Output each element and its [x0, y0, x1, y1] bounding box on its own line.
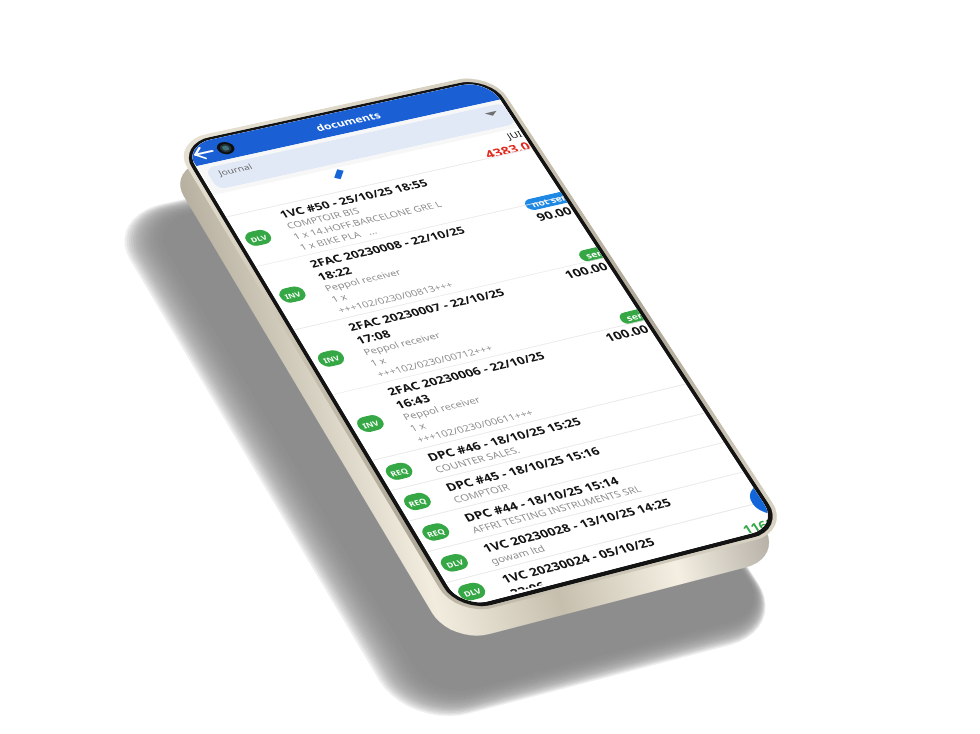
button[interactable]: Back	[184, 139, 226, 166]
staticText: COMPTOIR	[451, 481, 513, 506]
staticText: 1VC 20230028 - 13/10/25 14:25	[479, 494, 674, 555]
staticText: DLV	[248, 232, 269, 244]
staticText: sent	[583, 248, 603, 261]
staticText: REQ	[424, 526, 447, 539]
staticText: COMPTOIR BIS	[284, 205, 363, 232]
staticText: 1169	[739, 515, 778, 535]
button[interactable]: Add document	[743, 486, 771, 518]
staticText: COUNTER SALES.	[432, 444, 523, 476]
staticText: 1 x	[368, 355, 389, 369]
button[interactable]: DLV	[428, 472, 762, 582]
staticText: Peppol receiver	[361, 329, 443, 358]
staticText: 17:08	[353, 326, 393, 347]
button[interactable]: DLV	[447, 502, 779, 608]
button[interactable]: Edit	[329, 167, 349, 181]
staticText: sent	[623, 310, 644, 323]
button[interactable]: INV	[257, 197, 603, 329]
staticText: INV	[360, 418, 381, 430]
staticText: 1 x 14.HOFF.BARCELONE GRE L	[291, 198, 445, 242]
staticText: documents	[313, 109, 384, 134]
staticText: 22:06	[507, 578, 544, 593]
staticText: REQ	[388, 465, 411, 478]
button[interactable]: DLV	[227, 149, 563, 266]
staticText: Peppol receiver	[400, 393, 483, 423]
staticText: AFFRI TESTING INSTRUMENTS SRL	[469, 483, 644, 536]
staticText: Journal	[216, 161, 254, 178]
button[interactable]: REQ	[373, 384, 704, 490]
staticText: 90.00	[533, 203, 575, 224]
staticText: INV	[321, 353, 341, 365]
staticText: 1 x BIKE PLA ...	[297, 225, 380, 253]
staticText: JUIN	[504, 128, 525, 141]
staticText: DPC #44 - 18/10/25 15:14	[461, 473, 622, 525]
staticText: DLV	[444, 556, 466, 570]
staticText: 2FAC 20230006 - 22/10/25	[384, 348, 548, 398]
button[interactable]: REQ	[391, 413, 724, 521]
staticText: 100.00	[601, 321, 652, 344]
staticText: 1 x	[329, 291, 350, 305]
staticText: 1VC #50 - 25/10/25 18:55	[276, 176, 431, 221]
staticText: DLV	[461, 585, 483, 598]
staticText: INV	[282, 289, 303, 301]
staticText: not sent	[529, 192, 567, 209]
staticText: 1VC 20230024 - 05/10/25	[498, 534, 658, 586]
button[interactable]: INV	[334, 321, 685, 460]
staticText: DPC #46 - 18/10/25 15:25	[424, 414, 584, 464]
button[interactable]: Journal	[205, 103, 516, 190]
staticText: +++102/0230/00813+++	[335, 279, 456, 316]
staticText: 16:43	[392, 391, 433, 412]
staticText: +++102/0230/00712+++	[374, 342, 495, 380]
staticText: 4383.00	[481, 138, 532, 158]
staticText: 100.00	[561, 258, 611, 281]
staticText: gowam ltd	[488, 542, 548, 567]
staticText: Peppol receiver	[322, 266, 404, 294]
staticText: 2FAC 20230008 - 22/10/25	[306, 223, 468, 270]
button[interactable]: REQ	[410, 443, 743, 551]
staticText: 1 x	[407, 420, 429, 434]
button[interactable]: INV	[295, 258, 644, 394]
staticText: 2FAC 20230007 - 22/10/25	[345, 285, 507, 334]
staticText: 18:22	[314, 263, 354, 283]
staticText: REQ	[406, 495, 429, 508]
staticText: DPC #45 - 18/10/25 15:16	[442, 443, 603, 494]
staticText: +++102/0230/00611+++	[414, 406, 536, 446]
